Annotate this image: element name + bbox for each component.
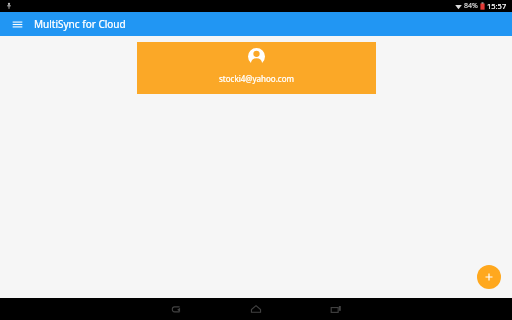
button[interactable]: stocki4@yahoo.com	[137, 42, 376, 94]
button[interactable]: Back	[161, 298, 191, 320]
button[interactable]: Open navigation drawer	[0, 12, 34, 36]
staticText: MultiSync for Cloud	[34, 17, 126, 31]
button[interactable]: Add account	[477, 265, 501, 289]
staticText: stocki4@yahoo.com	[219, 73, 294, 84]
staticText: 15:57	[487, 1, 507, 11]
staticText: 84%	[464, 1, 478, 11]
button[interactable]: Recent apps	[321, 298, 351, 320]
button[interactable]: Home	[241, 298, 271, 320]
